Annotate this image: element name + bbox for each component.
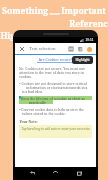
button[interactable]: Home [51,169,60,178]
staticText: Highlight [0,30,41,42]
button[interactable]: Close [18,45,26,53]
staticText: 10:11 [85,38,94,42]
staticText: Your Note: [19,119,38,124]
staticText: information or storing passwords in a co… [19,85,92,89]
staticText: values stored in the cookie. [19,111,66,115]
staticText: Tap here/long to add note or enter your … [21,127,90,131]
staticText: Something [2,5,48,17]
staticText: Important [61,5,106,17]
button[interactable]: Recent apps [75,169,84,178]
staticText: • Keep the lifetime of a cookie as short… [19,96,85,100]
button[interactable]: Select all [67,45,75,53]
staticText: is a bad idea. [19,89,43,93]
staticText: practically possible. [19,100,53,104]
staticText: attention to the type of data you store … [19,70,84,74]
staticText: more [49,11,60,17]
staticText: • Encrypt cookie data to help protect th… [19,107,84,111]
button[interactable]: Copy [76,45,84,53]
button[interactable]: Highlight [75,58,90,62]
button[interactable]: Back [28,169,37,178]
staticText: Are Cookies secure? [38,57,73,62]
staticText: Highlight [75,58,90,62]
staticText: Text selection [29,46,56,51]
staticText: No, Cookies are not secure. You must pay [19,66,85,70]
button[interactable]: Highlight colour [85,45,93,53]
staticText: Reference [69,18,108,42]
staticText: it for Future [43,36,67,42]
staticText: • Cookies are not designed to store crit… [19,81,87,85]
staticText: cookies. [19,74,32,78]
button[interactable]: Tap here/long to add note or enter your … [19,125,92,138]
